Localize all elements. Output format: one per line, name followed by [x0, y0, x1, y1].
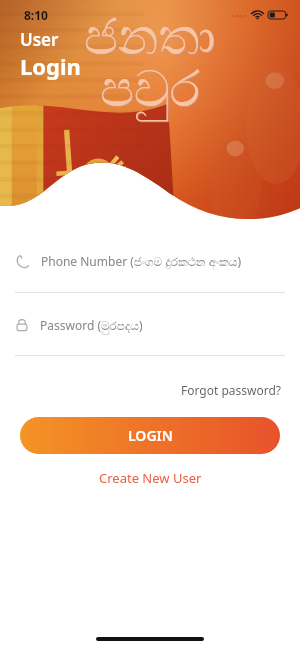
staticText: Login — [20, 51, 81, 81]
staticText: Create New User — [99, 469, 202, 487]
staticText: ජනතා — [84, 14, 216, 64]
button[interactable]: Phone Number (ජංගම දුරකථන අංකය) — [0, 245, 300, 277]
staticText: පවුර — [100, 66, 200, 116]
button[interactable]: Forgot password? — [163, 376, 300, 404]
staticText: User — [20, 28, 59, 51]
staticText: ජනතා — [85, 15, 217, 65]
staticText: Password (මුරපදය) — [40, 317, 143, 333]
button[interactable]: Password (මුරපදය) — [0, 309, 300, 341]
staticText: Phone Number (ජංගම දුරකථන අංකය) — [41, 253, 242, 269]
staticText: 8:10 — [24, 7, 48, 23]
staticText: Forgot password? — [181, 382, 282, 398]
staticText: LOGIN — [128, 426, 173, 445]
button[interactable]: Create New User — [83, 463, 218, 493]
button[interactable]: LOGIN — [20, 417, 280, 454]
staticText: පවුර — [101, 67, 201, 117]
